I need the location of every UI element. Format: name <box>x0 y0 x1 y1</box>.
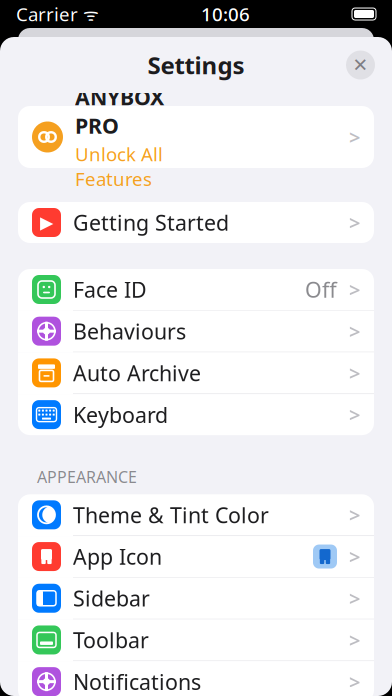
staticText: ✕ <box>352 54 368 76</box>
staticText: Face ID <box>73 275 147 304</box>
button[interactable]: ▶ <box>18 202 374 243</box>
button[interactable]: Auto Archive <box>18 352 374 394</box>
staticText: Sidebar <box>73 584 150 612</box>
staticText: > <box>349 124 360 150</box>
button[interactable]: Keyboard <box>18 394 374 435</box>
staticText: ᯤ <box>78 2 99 25</box>
staticText: ANYBOX PRO <box>75 83 164 140</box>
staticText: Theme & Tint Color <box>73 501 269 529</box>
button[interactable]: Behaviours <box>18 311 374 352</box>
button[interactable]: Theme & Tint Color <box>18 494 374 536</box>
staticText: Off <box>305 275 337 304</box>
staticText: 10:06 <box>201 2 250 26</box>
staticText: > <box>349 543 360 570</box>
staticText: Getting Started <box>73 208 229 237</box>
staticText: Notifications <box>73 667 201 696</box>
button[interactable]: Sidebar <box>18 578 374 619</box>
staticText: Unlock All Features <box>75 141 163 191</box>
staticText: > <box>349 318 360 344</box>
staticText: Toolbar <box>73 626 149 654</box>
button[interactable]: Close <box>346 50 375 79</box>
button[interactable]: Face ID <box>18 269 374 311</box>
staticText: APPEARANCE <box>37 466 137 487</box>
button[interactable]: ANYBOX PRO <box>18 106 374 168</box>
staticText: > <box>349 401 360 428</box>
button[interactable]: Toolbar <box>18 619 374 661</box>
staticText: > <box>349 276 360 303</box>
staticText: > <box>349 585 360 612</box>
staticText: Behaviours <box>73 317 186 345</box>
staticText: ▶ <box>40 213 53 232</box>
button[interactable]: App Icon <box>18 536 374 578</box>
staticText: Carrier <box>16 2 78 26</box>
staticText: > <box>349 502 360 528</box>
staticText: Keyboard <box>73 400 168 429</box>
staticText: > <box>349 209 360 236</box>
staticText: App Icon <box>73 542 162 571</box>
staticText: Auto Archive <box>73 359 201 387</box>
staticText: > <box>349 360 360 386</box>
staticText: > <box>349 627 360 653</box>
staticText: Settings <box>147 49 244 81</box>
button[interactable]: Notifications <box>18 661 374 696</box>
staticText: > <box>349 668 360 695</box>
